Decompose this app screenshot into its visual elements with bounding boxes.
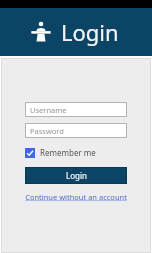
- button[interactable]: Login: [25, 167, 127, 184]
- button[interactable]: Remember me checkbox: [25, 147, 127, 158]
- button[interactable]: Username: [25, 102, 127, 117]
- button[interactable]: Password: [25, 123, 127, 138]
- other: Remember me checkbox: [25, 148, 35, 158]
- staticText: Continue without an account: [25, 192, 127, 202]
- staticText: Remember me: [40, 147, 96, 158]
- staticText: Password: [30, 126, 64, 136]
- staticText: Username: [30, 105, 67, 115]
- staticText: Login: [61, 17, 119, 47]
- staticText: Login: [66, 170, 87, 181]
- button[interactable]: Continue without an account: [25, 192, 127, 202]
- other: Login: [30, 21, 52, 43]
